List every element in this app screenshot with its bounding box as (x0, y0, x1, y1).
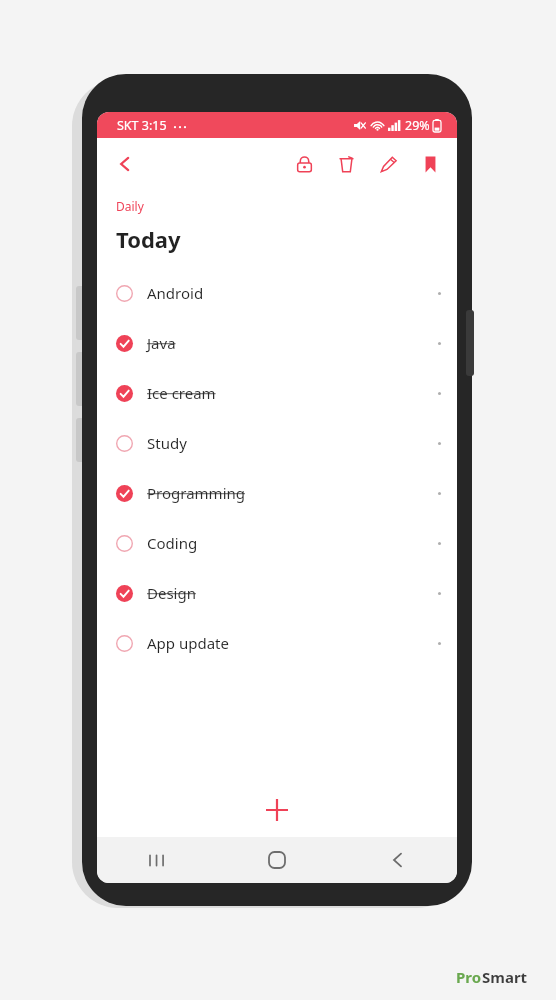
button[interactable]: Add task (97, 783, 457, 837)
staticText: Study (147, 433, 187, 453)
button[interactable]: App update (97, 618, 457, 668)
button[interactable]: Back (337, 837, 457, 883)
staticText: Smart (482, 967, 528, 987)
button[interactable]: Design (97, 568, 457, 618)
staticText: App update (147, 633, 229, 653)
button[interactable]: Back (105, 144, 145, 184)
staticText: 29% (405, 117, 430, 134)
button[interactable]: Edit (371, 147, 405, 181)
staticText: Java (147, 333, 176, 353)
staticText: Coding (147, 533, 198, 553)
button[interactable]: Bookmark (413, 147, 447, 181)
staticText: Daily (116, 198, 144, 214)
staticText: Programming (147, 483, 245, 503)
staticText: SKT 3:15 (117, 117, 167, 134)
staticText: Today (116, 224, 181, 254)
button[interactable]: Home (217, 837, 337, 883)
staticText: Ice cream (147, 383, 216, 403)
button[interactable]: Ice cream (97, 368, 457, 418)
button[interactable]: Programming (97, 468, 457, 518)
button[interactable]: Study (97, 418, 457, 468)
button[interactable]: Delete (329, 147, 363, 181)
staticText: Design (147, 583, 196, 603)
button[interactable]: Lock (287, 147, 321, 181)
staticText: Pro (456, 967, 482, 987)
button[interactable]: Android (97, 268, 457, 318)
button[interactable]: Coding (97, 518, 457, 568)
button[interactable]: Java (97, 318, 457, 368)
staticText: Android (147, 283, 204, 303)
button[interactable]: Recents (97, 837, 217, 883)
